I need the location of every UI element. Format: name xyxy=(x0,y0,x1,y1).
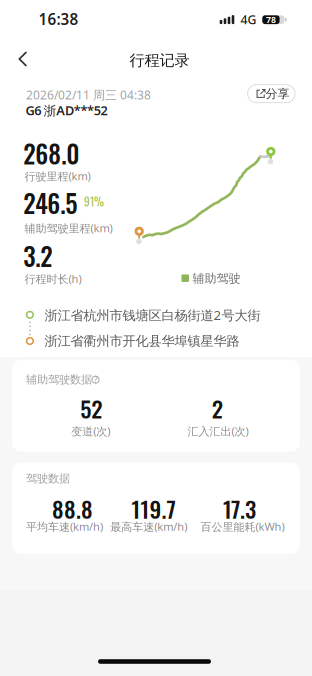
staticText: G6 浙AD***52 xyxy=(25,102,107,119)
staticText: 16:38 xyxy=(38,9,78,29)
staticText: ? xyxy=(94,374,97,385)
staticText: 4G xyxy=(240,11,256,28)
staticText: 平均车速(km/h) xyxy=(26,519,103,534)
staticText: 17.3 xyxy=(223,492,256,525)
staticText: 2026/02/11 周三 04:38 xyxy=(26,87,151,103)
staticText: 最高车速(km/h) xyxy=(110,519,187,534)
staticText: 辅助驾驶 xyxy=(192,271,240,286)
staticText: 行程记录 xyxy=(129,51,189,70)
staticText: 268.0 xyxy=(23,135,79,172)
button[interactable]: 辅助驾驶数据说明 xyxy=(88,373,102,387)
staticText: 78 xyxy=(266,14,276,26)
staticText: 辅助驾驶里程(km) xyxy=(24,220,112,236)
staticText: 辅助驾驶数据 xyxy=(26,372,92,386)
staticText: 52 xyxy=(80,391,102,425)
staticText: 88.8 xyxy=(52,492,93,525)
staticText: 驾驶数据 xyxy=(26,471,70,485)
staticText: 汇入汇出(次) xyxy=(187,423,248,439)
button[interactable]: 分享 xyxy=(247,84,296,103)
staticText: 246.5 xyxy=(23,184,77,221)
staticText: 2 xyxy=(212,391,223,425)
button[interactable]: 返回 xyxy=(0,38,44,80)
staticText: 变道(次) xyxy=(71,423,110,439)
staticText: 浙江省衢州市开化县华埠镇星华路 xyxy=(44,333,239,349)
staticText: 行程时长(h) xyxy=(24,271,81,286)
staticText: 浙江省杭州市钱塘区白杨街道2号大街 xyxy=(44,306,260,324)
staticText: 119.7 xyxy=(131,492,175,525)
staticText: 百公里能耗(kWh) xyxy=(201,519,285,534)
staticText: 分享 xyxy=(266,86,290,101)
staticText: 3.2 xyxy=(23,237,52,274)
staticText: 91% xyxy=(84,193,104,210)
staticText: 行驶里程(km) xyxy=(24,168,90,184)
